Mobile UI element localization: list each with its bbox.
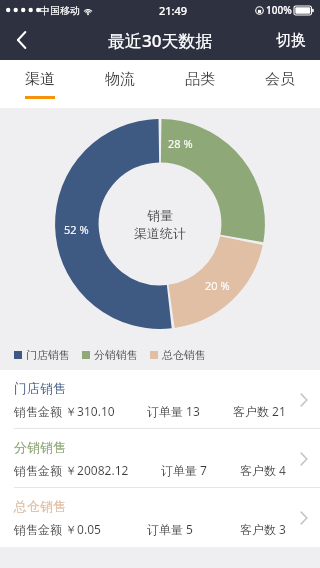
staticText: 100%: [266, 3, 292, 17]
staticText: 门店销售: [26, 348, 70, 362]
staticText: 渠道: [25, 70, 55, 89]
staticText: 会员: [265, 70, 295, 89]
button[interactable]: 门店销售: [0, 370, 320, 429]
staticText: 20 %: [205, 278, 230, 293]
staticText: 客户数 4: [240, 462, 286, 478]
staticText: 订单量 7: [161, 462, 207, 478]
staticText: 分销销售: [94, 348, 138, 362]
staticText: 门店销售: [14, 380, 66, 396]
button[interactable]: 品类: [160, 60, 240, 108]
staticText: 销量: [147, 207, 173, 223]
staticText: 物流: [105, 70, 135, 89]
staticText: 销售金额 ￥0.05: [14, 521, 101, 537]
button[interactable]: 总仓销售: [0, 488, 320, 547]
button[interactable]: 会员: [240, 60, 320, 108]
staticText: 品类: [185, 70, 215, 89]
staticText: 总仓销售: [14, 498, 66, 514]
staticText: 销售金额 ￥310.10: [14, 403, 115, 419]
staticText: 切换: [276, 31, 306, 50]
staticText: 52 %: [64, 222, 89, 237]
staticText: 客户数 21: [233, 403, 286, 419]
button[interactable]: 切换: [262, 20, 320, 60]
staticText: 中国移动: [40, 4, 80, 17]
staticText: 订单量 5: [147, 521, 193, 537]
button[interactable]: 分销销售: [0, 429, 320, 488]
staticText: 订单量 13: [147, 403, 200, 419]
staticText: 销售金额 ￥20082.12: [14, 462, 129, 478]
staticText: 分销销售: [14, 439, 66, 455]
button[interactable]: 渠道: [0, 60, 80, 108]
staticText: 21:49: [159, 3, 188, 18]
staticText: 渠道统计: [134, 225, 186, 241]
staticText: 最近30天数据: [108, 29, 213, 52]
button[interactable]: 物流: [80, 60, 160, 108]
staticText: 28 %: [168, 136, 193, 151]
button[interactable]: Back: [0, 20, 44, 60]
staticText: 总仓销售: [162, 348, 206, 362]
staticText: 客户数 3: [240, 521, 286, 537]
